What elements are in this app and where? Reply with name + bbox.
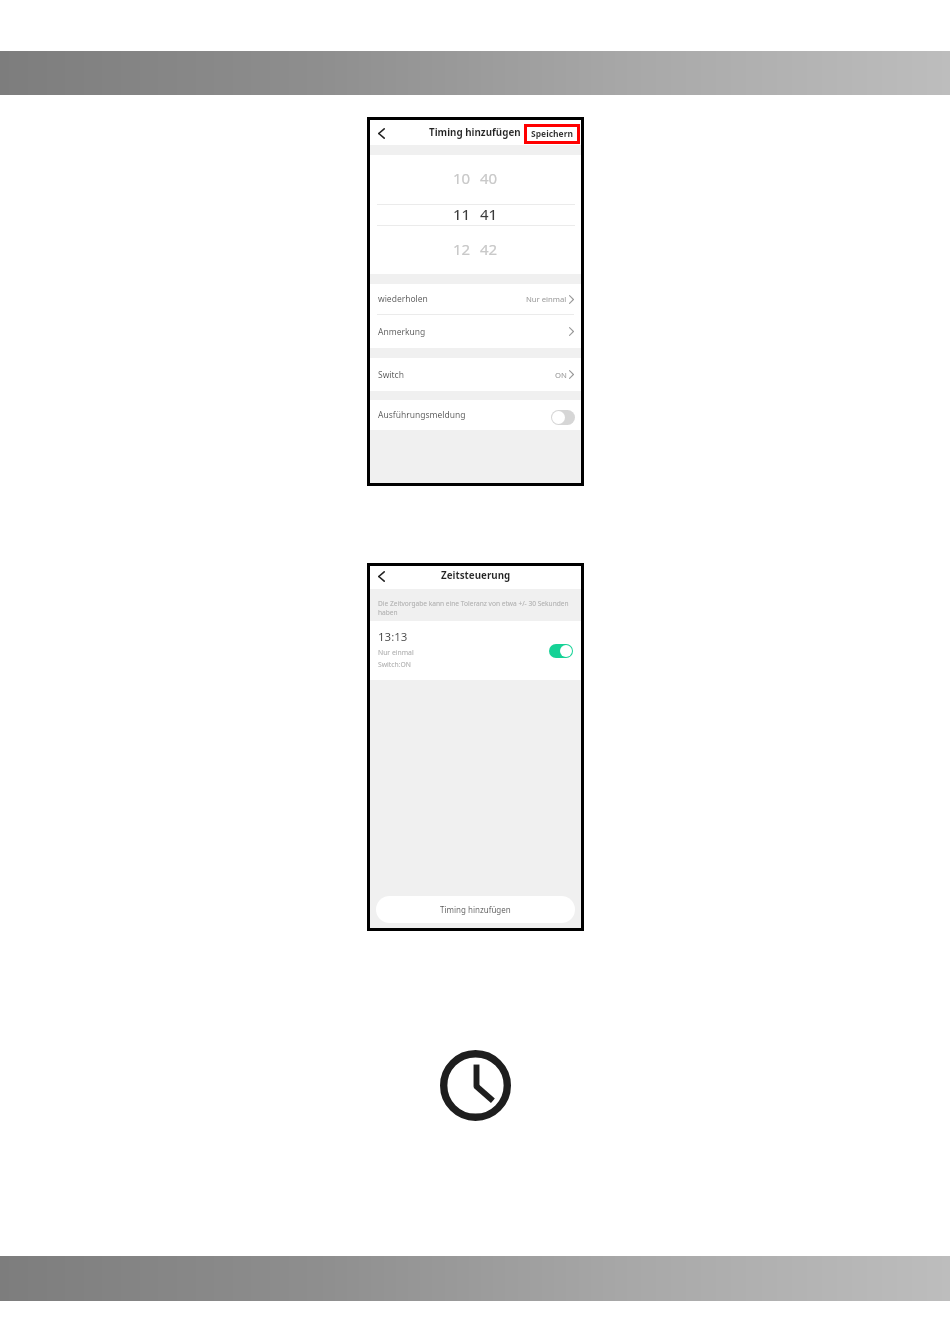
button[interactable]: Ausführungsmeldung aus (551, 410, 575, 425)
staticText: wiederholen (378, 293, 428, 305)
staticText: Timing hinzufügen (440, 904, 511, 915)
staticText: Switch:ON (378, 660, 412, 669)
staticText: Timing hinzufügen (429, 126, 521, 139)
button[interactable]: Anmerkung (370, 315, 581, 348)
staticText: Zeitsteuerung (441, 569, 511, 582)
staticText: Speichern (531, 128, 573, 140)
button[interactable]: Switch (370, 358, 581, 391)
button[interactable]: Ausführungsmeldung (370, 400, 581, 430)
staticText: 13:13 (378, 629, 408, 645)
staticText: Nur einmal (526, 294, 567, 304)
staticText: 41 (480, 204, 498, 224)
button[interactable]: wiederholen (370, 284, 581, 314)
staticText: Switch (378, 369, 404, 381)
button[interactable]: Speichern (524, 124, 580, 144)
staticText: ON (555, 370, 567, 380)
button[interactable]: Back (373, 568, 389, 584)
staticText: 12 (453, 239, 471, 259)
staticText: 42 (480, 239, 498, 259)
staticText: 40 (480, 168, 498, 188)
staticText: 10 (453, 168, 471, 188)
staticText: Nur einmal (378, 648, 414, 657)
staticText: 11 (453, 204, 471, 224)
staticText: Die Zeitvorgabe kann eine Toleranz von e… (378, 599, 575, 617)
staticText: Anmerkung (378, 326, 426, 338)
staticText: Ausführungsmeldung (378, 409, 466, 421)
button[interactable]: Timing hinzufügen (376, 896, 575, 923)
button[interactable]: Back (373, 125, 389, 141)
button[interactable]: Timer 13:13 ein (549, 644, 573, 658)
button[interactable]: 13:13 (370, 621, 581, 680)
